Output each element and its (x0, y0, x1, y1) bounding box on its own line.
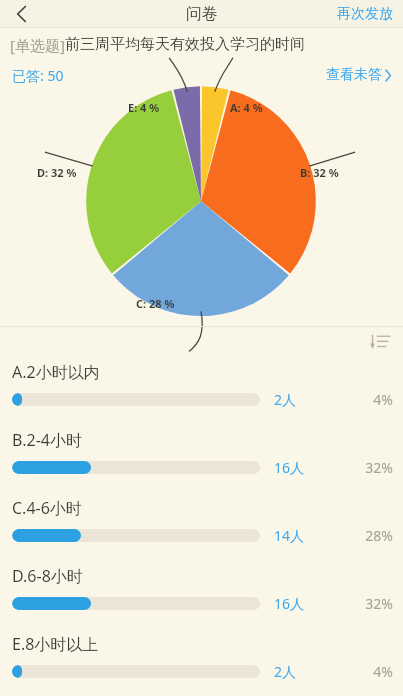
staticText: B.2-4小时 (12, 429, 82, 451)
staticText: B: 32 % (300, 165, 339, 180)
staticText: [单选题] (10, 35, 65, 55)
button[interactable]: 查看未答 (324, 64, 393, 86)
staticText: 32% (318, 594, 393, 613)
button[interactable]: 再次发放 (327, 2, 403, 26)
staticText: 前三周平均每天有效投入学习的时间 (65, 35, 305, 54)
staticText: 28% (318, 526, 393, 545)
staticText: 2人 (274, 390, 318, 409)
staticText: D: 32 % (37, 165, 77, 180)
staticText: 14人 (274, 526, 318, 545)
staticText: E.8小时以上 (12, 633, 99, 655)
staticText: C.4-6小时 (12, 497, 82, 519)
staticText: 2人 (274, 662, 318, 681)
staticText: 再次发放 (337, 5, 393, 23)
staticText: D.6-8小时 (12, 565, 83, 587)
staticText: 32% (318, 458, 393, 477)
staticText: A: 4 % (230, 100, 263, 115)
staticText: C: 28 % (136, 296, 175, 311)
button[interactable]: Sort (365, 327, 395, 357)
button[interactable]: Back (0, 0, 44, 27)
staticText: 已答: 50 (12, 66, 64, 85)
staticText: 问卷 (186, 4, 218, 24)
staticText: 查看未答 (326, 66, 382, 84)
staticText: 16人 (274, 594, 318, 613)
staticText: E: 4 % (128, 100, 160, 115)
staticText: 4% (318, 662, 393, 681)
staticText: 16人 (274, 458, 318, 477)
staticText: 4% (318, 390, 393, 409)
staticText: A.2小时以内 (12, 361, 100, 383)
